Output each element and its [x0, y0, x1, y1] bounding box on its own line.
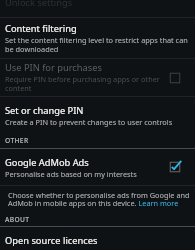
other: Unchecked	[167, 70, 183, 86]
staticText: Set the content filtering level to restr…	[5, 35, 191, 54]
button[interactable]: Content filtering	[0, 18, 195, 58]
staticText: OTHER	[5, 136, 29, 145]
staticText: Choose whether to personalise ads from G…	[8, 190, 190, 208]
button[interactable]: Unlock settings	[0, 0, 195, 17]
staticText: Open source licences	[5, 234, 98, 247]
staticText: Require PIN before purchasing apps or ot…	[5, 74, 167, 93]
button[interactable]: Open source licences	[0, 227, 195, 250]
staticText: Unlock settings	[5, 0, 73, 9]
button[interactable]: Set or change PIN	[0, 97, 195, 128]
button[interactable]: Google AdMob Ads	[0, 149, 195, 185]
staticText: Create a PIN to prevent changes to user …	[5, 117, 173, 127]
staticText: ABOUT	[5, 215, 30, 224]
staticText: Google AdMob Ads	[5, 156, 89, 169]
other: Checked	[167, 159, 183, 175]
staticText: Content filtering	[5, 22, 77, 35]
staticText: Set or change PIN	[5, 104, 84, 117]
staticText: Use PIN for purchases	[5, 61, 102, 74]
button[interactable]: Use PIN for purchases	[0, 59, 195, 96]
staticText: Personalise ads based on my interests	[5, 169, 137, 179]
